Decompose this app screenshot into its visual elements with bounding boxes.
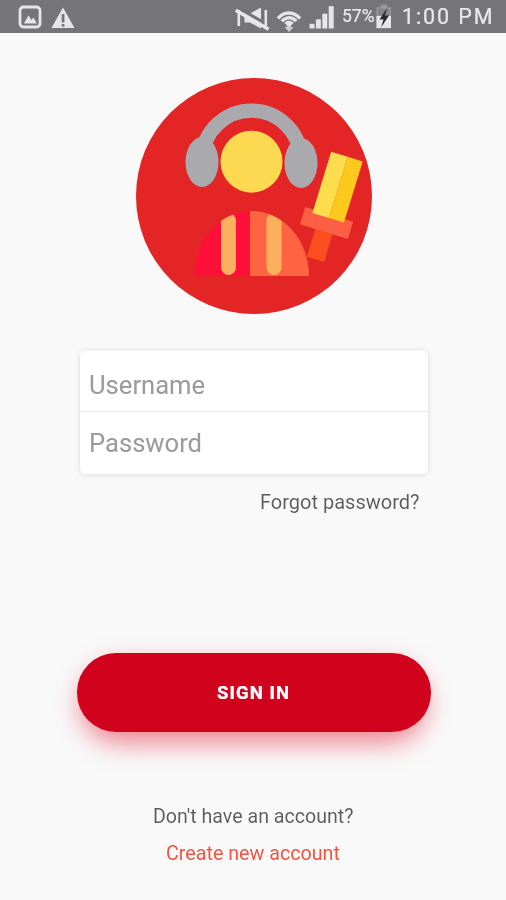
staticText: Username bbox=[89, 370, 206, 400]
staticText: Don't have an account? bbox=[153, 805, 354, 828]
button[interactable]: Create new account bbox=[160, 838, 346, 869]
button[interactable]: Password bbox=[79, 412, 429, 475]
button[interactable]: Username bbox=[79, 349, 429, 411]
button[interactable]: Forgot password? bbox=[230, 486, 420, 516]
staticText: Create new account bbox=[166, 842, 340, 865]
staticText: 57% bbox=[342, 6, 375, 27]
staticText: Forgot password? bbox=[260, 490, 420, 513]
staticText: Password bbox=[89, 428, 203, 458]
staticText: 1:00 PM bbox=[402, 4, 495, 29]
staticText: SIGN IN bbox=[217, 682, 291, 704]
button[interactable]: SIGN IN bbox=[77, 653, 431, 732]
